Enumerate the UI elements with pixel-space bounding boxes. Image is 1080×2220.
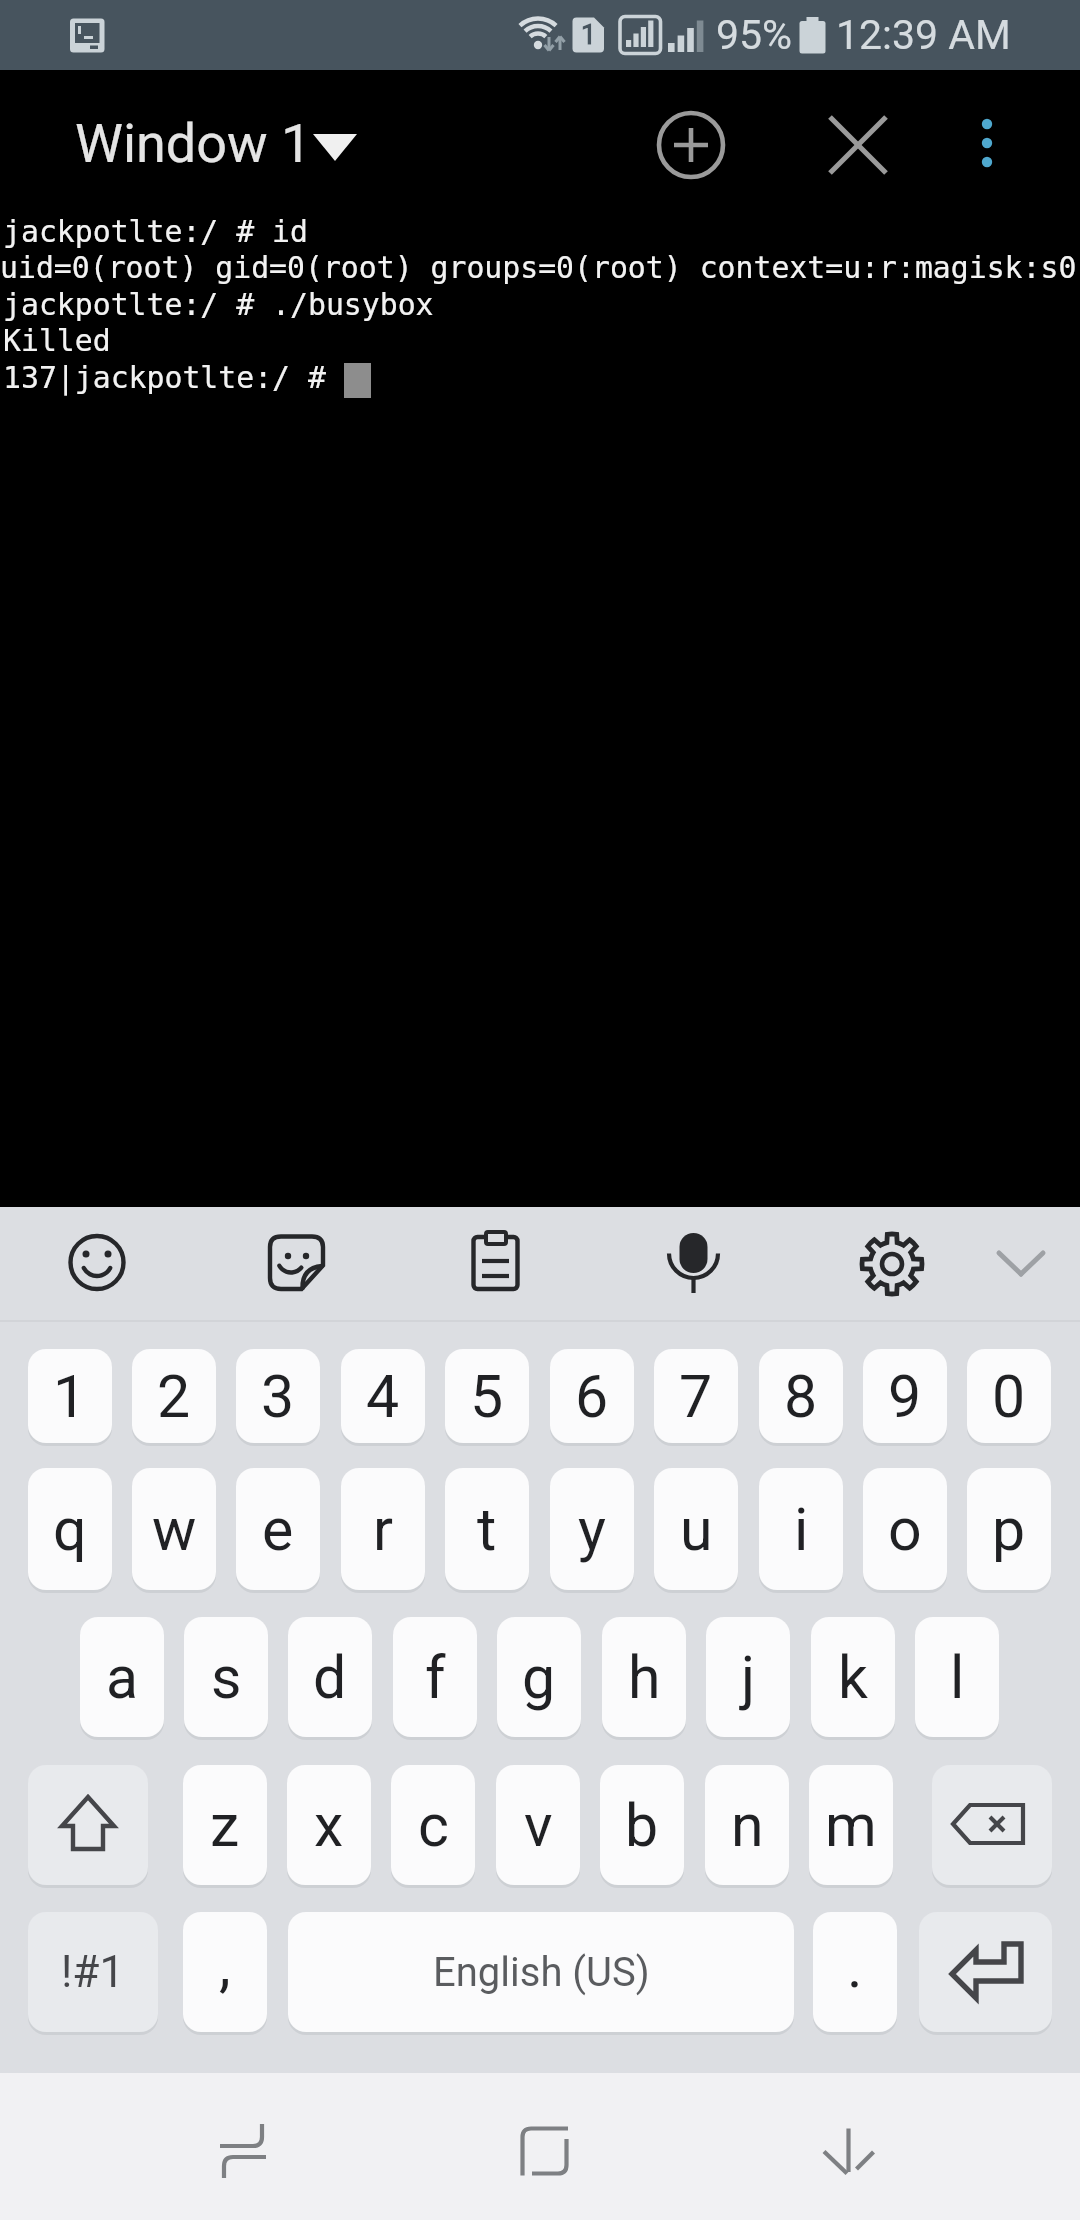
button[interactable]: , xyxy=(183,1912,267,2032)
staticText: d xyxy=(313,1643,347,1712)
button[interactable] xyxy=(973,1215,1068,1310)
staticText: c xyxy=(418,1791,449,1860)
staticText: Window 1 xyxy=(75,112,312,175)
staticText: x xyxy=(314,1791,344,1860)
button[interactable] xyxy=(180,2095,290,2205)
staticText: 2 xyxy=(157,1362,191,1431)
button[interactable]: n xyxy=(705,1765,789,1885)
button[interactable]: l xyxy=(915,1617,999,1737)
staticText: 3 xyxy=(261,1362,295,1431)
staticText: f xyxy=(425,1643,446,1712)
button[interactable]: m xyxy=(809,1765,893,1885)
staticText: t xyxy=(477,1495,497,1564)
button[interactable]: 9 xyxy=(863,1349,947,1443)
button[interactable] xyxy=(808,95,908,195)
button[interactable] xyxy=(793,2095,903,2205)
staticText: e xyxy=(262,1495,294,1564)
staticText: 9 xyxy=(888,1362,922,1431)
staticText: . xyxy=(847,1932,863,2001)
staticText: n xyxy=(731,1791,764,1860)
staticText: uid=0(root) gid=0(root) groups=0(root) c… xyxy=(0,250,1077,285)
staticText: v xyxy=(524,1791,553,1860)
button[interactable]: a xyxy=(80,1617,164,1737)
staticText: r xyxy=(373,1495,393,1564)
button[interactable] xyxy=(448,1215,543,1310)
button[interactable]: 5 xyxy=(445,1349,529,1443)
staticText: p xyxy=(992,1495,1026,1564)
button[interactable]: e xyxy=(236,1468,320,1590)
button[interactable]: y xyxy=(550,1468,634,1590)
button[interactable]: o xyxy=(863,1468,947,1590)
button[interactable]: 6 xyxy=(550,1349,634,1443)
staticText: jackpotlte:/ # ./busybox xyxy=(3,287,434,322)
button[interactable]: t xyxy=(445,1468,529,1590)
button[interactable]: k xyxy=(811,1617,895,1737)
staticText: jackpotlte:/ # id xyxy=(3,214,308,249)
staticText: b xyxy=(625,1791,659,1860)
button[interactable]: 3 xyxy=(236,1349,320,1443)
staticText: y xyxy=(578,1495,606,1564)
staticText: Killed xyxy=(3,323,111,358)
button[interactable]: j xyxy=(706,1617,790,1737)
staticText: l xyxy=(950,1643,965,1712)
button[interactable]: p xyxy=(967,1468,1051,1590)
button[interactable]: !#1 xyxy=(28,1912,158,2032)
button[interactable]: v xyxy=(496,1765,580,1885)
staticText: i xyxy=(794,1495,809,1564)
button[interactable]: f xyxy=(393,1617,477,1737)
staticText: 8 xyxy=(784,1362,818,1431)
button[interactable]: English (US) xyxy=(288,1912,794,2032)
button[interactable] xyxy=(919,1912,1052,2032)
button[interactable]: 2 xyxy=(132,1349,216,1443)
button[interactable]: 8 xyxy=(759,1349,843,1443)
button[interactable]: g xyxy=(497,1617,581,1737)
staticText: 95% xyxy=(716,11,793,59)
staticText: u xyxy=(680,1495,713,1564)
button[interactable]: u xyxy=(654,1468,738,1590)
button[interactable] xyxy=(248,1215,343,1310)
staticText: z xyxy=(210,1791,240,1860)
button[interactable]: x xyxy=(287,1765,371,1885)
button[interactable]: 0 xyxy=(967,1349,1051,1443)
button[interactable]: w xyxy=(132,1468,216,1590)
staticText: , xyxy=(219,1930,231,1999)
button[interactable]: 7 xyxy=(654,1349,738,1443)
staticText: o xyxy=(888,1495,922,1564)
staticText: s xyxy=(211,1643,242,1712)
staticText: k xyxy=(838,1643,868,1712)
button[interactable]: d xyxy=(288,1617,372,1737)
staticText: w xyxy=(152,1495,197,1564)
staticText: English (US) xyxy=(433,1949,650,1996)
button[interactable]: s xyxy=(184,1617,268,1737)
button[interactable] xyxy=(932,1765,1052,1885)
staticText: 12:39 AM xyxy=(836,11,1011,59)
button[interactable] xyxy=(940,95,1035,195)
button[interactable]: i xyxy=(759,1468,843,1590)
staticText: 0 xyxy=(992,1362,1026,1431)
button[interactable] xyxy=(648,1215,743,1310)
staticText: j xyxy=(741,1643,756,1712)
button[interactable] xyxy=(640,95,740,195)
staticText: h xyxy=(628,1643,661,1712)
button[interactable] xyxy=(488,2095,598,2205)
button[interactable]: b xyxy=(600,1765,684,1885)
button[interactable]: q xyxy=(28,1468,112,1590)
staticText: 6 xyxy=(575,1362,609,1431)
button[interactable]: 4 xyxy=(341,1349,425,1443)
button[interactable]: 1 xyxy=(28,1349,112,1443)
button[interactable]: z xyxy=(183,1765,267,1885)
button[interactable] xyxy=(50,1215,145,1310)
staticText: 1 xyxy=(53,1362,87,1431)
button[interactable] xyxy=(845,1215,940,1310)
button[interactable]: c xyxy=(391,1765,475,1885)
staticText: 1 xyxy=(581,19,597,51)
staticText: m xyxy=(825,1791,877,1860)
staticText: 7 xyxy=(679,1362,713,1431)
staticText: 4 xyxy=(366,1362,400,1431)
staticText: 137|jackpotlte:/ # xyxy=(3,360,344,395)
button[interactable] xyxy=(28,1765,148,1885)
button[interactable]: h xyxy=(602,1617,686,1737)
button[interactable]: . xyxy=(813,1912,897,2032)
button[interactable]: r xyxy=(341,1468,425,1590)
staticText: 5 xyxy=(470,1362,504,1431)
